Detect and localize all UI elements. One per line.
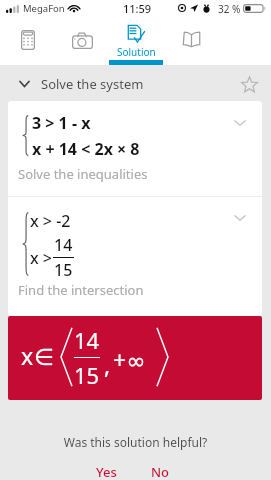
button[interactable]: Calculator (1, 20, 55, 65)
staticText: Yes (96, 463, 117, 480)
button[interactable]: Solve the system (0, 65, 271, 102)
staticText: ∈ (34, 344, 55, 371)
staticText: x + 14 < 2x × 8 (32, 138, 140, 160)
staticText: Solve the system (41, 75, 144, 93)
button[interactable]: Expand step (234, 120, 246, 126)
staticText: +∞ (113, 344, 146, 375)
staticText: x > (30, 247, 53, 269)
button[interactable]: Textbook (164, 20, 218, 65)
staticText: 32 % (218, 2, 241, 16)
staticText: Solution (117, 45, 156, 59)
button[interactable]: 3 > 1 - x (0, 101, 271, 196)
staticText: No (151, 463, 170, 480)
staticText: Find the intersection (18, 281, 144, 299)
staticText: MegaFon (23, 2, 65, 15)
button[interactable]: Yes (84, 462, 128, 480)
staticText: 3 > 1 - x (32, 112, 91, 134)
staticText: x > -2 (30, 210, 71, 232)
staticText: 14 (54, 234, 73, 256)
staticText: 14 (74, 325, 100, 355)
staticText: 11:59 (123, 1, 152, 16)
button[interactable]: x > -2 (0, 197, 271, 316)
button[interactable]: Camera (55, 20, 109, 65)
button[interactable]: Expand step (234, 215, 246, 221)
staticText: 15 (54, 259, 73, 281)
staticText: 15 (74, 360, 100, 390)
button[interactable]: No (140, 462, 180, 480)
staticText: x (21, 340, 34, 371)
button[interactable]: Solution (109, 20, 163, 65)
staticText: Was this solution helpful? (0, 434, 271, 450)
staticText: , (104, 349, 111, 380)
button[interactable]: Favorite (233, 68, 265, 100)
staticText: Solve the inequalities (18, 165, 148, 183)
